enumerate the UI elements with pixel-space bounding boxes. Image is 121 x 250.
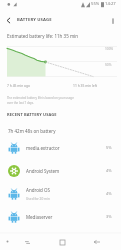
staticText: media.extractor — [26, 145, 60, 151]
staticText: 7h 42m 48s on battery — [8, 128, 56, 134]
staticText: 4% — [106, 191, 112, 196]
staticText: Android OS — [26, 187, 50, 193]
staticText: 3% — [106, 214, 112, 219]
staticText: The estimated battery life is based on y… — [7, 96, 74, 105]
button[interactable]: media.extractor — [0, 136, 121, 159]
staticText: 50% — [105, 63, 112, 67]
staticText: 11 h 35 min left — [73, 83, 98, 87]
button[interactable]: Android OS — [0, 182, 121, 205]
button[interactable]: Back — [90, 235, 104, 249]
button[interactable]: Android System — [0, 159, 121, 182]
staticText: Mediaserver — [26, 214, 53, 220]
staticText: 100% — [105, 47, 114, 51]
staticText: 4% — [106, 168, 112, 173]
staticText: Estimated battery life: 11h 35 min — [7, 33, 79, 39]
staticText: Android System — [26, 168, 60, 174]
staticText: BATTERY USAGE — [17, 17, 52, 23]
button[interactable]: Recents — [20, 235, 34, 249]
staticText: 5% — [106, 145, 112, 150]
staticText: 7 h 45 min ago — [7, 83, 30, 87]
staticText: 14:27 — [105, 1, 116, 7]
staticText: Used for 20 min — [26, 197, 50, 201]
staticText: 55% — [91, 1, 100, 7]
button[interactable]: More options — [104, 12, 121, 29]
staticText: RECENT BATTERY USAGE — [7, 112, 57, 117]
button[interactable]: Mediaserver — [0, 205, 121, 228]
button[interactable]: Home — [55, 235, 69, 249]
button[interactable]: Navigate up — [0, 12, 17, 29]
